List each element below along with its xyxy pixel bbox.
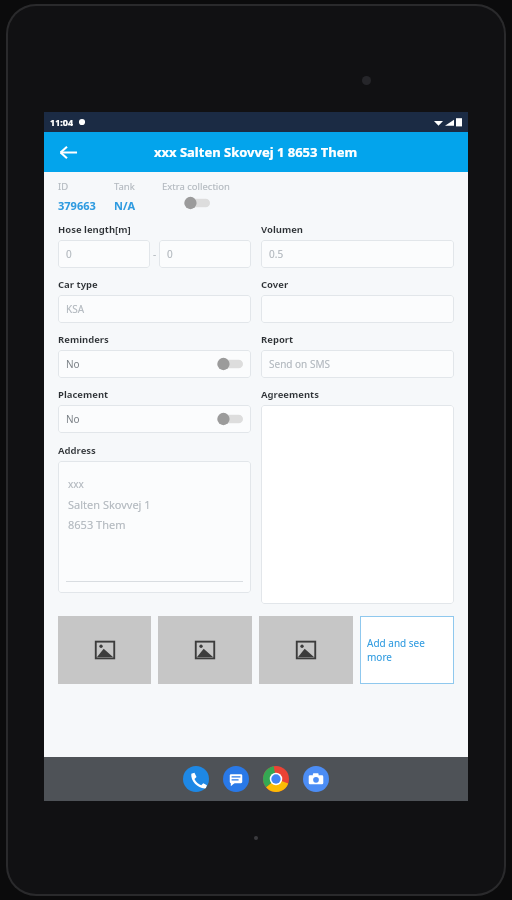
button[interactable]: No [58,350,251,378]
button[interactable]: xxx [58,461,251,593]
button[interactable]: Photo [259,616,353,684]
staticText: Volumen [261,223,304,236]
button[interactable]: Back [52,136,84,168]
staticText: N/A [114,198,136,213]
staticText: Hose length[m] [58,223,131,236]
staticText: Report [261,333,294,346]
staticText: Add and see more [367,636,447,664]
button[interactable]: Photo [58,616,151,684]
button[interactable]: 0 [58,240,150,268]
staticText: No [66,412,80,426]
button[interactable]: Add and see more [360,616,454,684]
staticText: 0.5 [269,247,284,261]
staticText: 0 [167,247,173,261]
staticText: Reminders [58,333,109,346]
staticText: xxx [68,477,84,491]
button[interactable] [261,405,454,604]
staticText: 11:04 [50,116,74,128]
staticText: Send on SMS [269,357,330,371]
button[interactable]: Chrome [263,766,289,792]
staticText: Cover [261,278,289,291]
button[interactable]: Phone [183,766,209,792]
staticText: 379663 [58,198,96,213]
staticText: Address [58,444,96,457]
button[interactable]: Messages [223,766,249,792]
staticText: ID [58,180,69,193]
staticText: 0 [66,247,72,261]
button[interactable]: KSA [58,295,251,323]
button[interactable]: 0 [159,240,251,268]
button[interactable] [261,295,454,323]
staticText: Placement [58,388,109,401]
button[interactable]: Camera [303,766,329,792]
staticText: Tank [114,180,135,193]
staticText: KSA [66,302,85,316]
staticText: - [153,247,157,261]
staticText: 8653 Them [68,517,126,532]
staticText: Extra collection [162,180,230,193]
staticText: No [66,357,80,371]
staticText: xxx Salten Skovvej 1 8653 Them [154,143,358,161]
button[interactable]: Send on SMS [261,350,454,378]
button[interactable]: Photo [158,616,252,684]
staticText: Car type [58,278,98,291]
staticText: Salten Skovvej 1 [68,497,151,512]
button[interactable]: No [58,405,251,433]
button[interactable]: 0.5 [261,240,454,268]
staticText: Agreements [261,388,319,401]
